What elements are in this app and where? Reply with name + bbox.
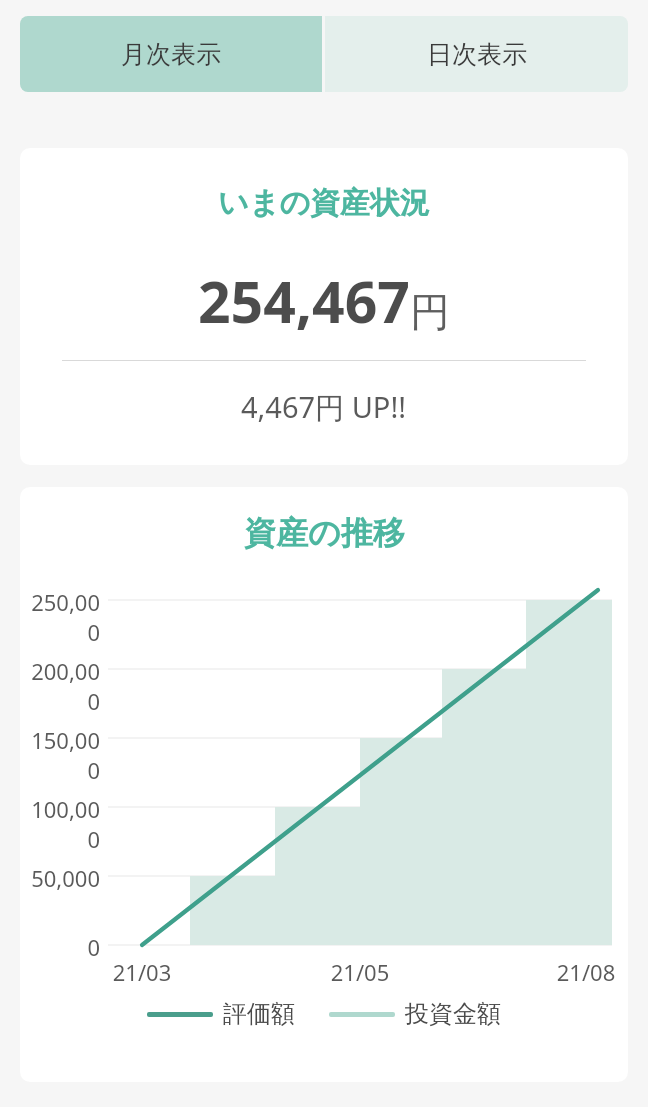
staticText: 投資金額 [405,999,501,1029]
other: 評価額 line [147,1012,213,1017]
staticText: 4,467円 UP!! [241,387,407,427]
staticText: 254,467 [198,262,410,340]
staticText: 21/05 [315,957,405,987]
staticText: 資産の推移 [244,513,405,553]
staticText: 21/08 [541,957,628,987]
staticText: 50,000 [20,863,100,893]
staticText: 月次表示 [121,39,221,70]
staticText: 200,000 [20,656,100,716]
button[interactable]: 月次表示 [20,16,322,92]
button[interactable]: いまの資産状況 [20,148,628,465]
staticText: 日次表示 [427,39,527,70]
button[interactable]: 日次表示 [325,16,628,92]
staticText: 0 [20,932,100,962]
other: 投資金額 line [329,1012,395,1017]
staticText: 21/03 [97,957,187,987]
staticText: 100,000 [20,794,100,854]
staticText: 円 [410,287,450,337]
staticText: 250,000 [20,587,100,647]
staticText: いまの資産状況 [218,184,431,222]
staticText: 評価額 [223,999,295,1029]
staticText: 150,000 [20,725,100,785]
